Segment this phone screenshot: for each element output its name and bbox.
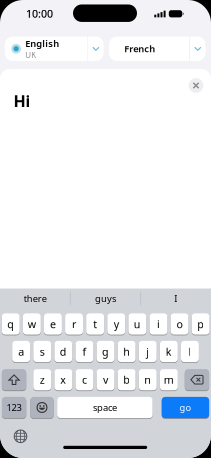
button[interactable]: l	[181, 341, 199, 362]
staticText: p	[197, 317, 204, 331]
button[interactable]: m	[160, 369, 178, 390]
staticText: space	[93, 401, 117, 414]
staticText: Hi	[13, 90, 30, 112]
staticText: o	[177, 317, 183, 331]
staticText: guys	[95, 292, 116, 305]
button[interactable]: x	[54, 369, 72, 390]
staticText: I	[174, 292, 177, 305]
button[interactable]: French	[109, 36, 205, 61]
staticText: French	[124, 43, 155, 55]
staticText: s	[40, 344, 45, 359]
staticText: e	[50, 317, 56, 331]
staticText: x	[60, 373, 66, 387]
staticText: q	[7, 317, 14, 331]
staticText: f	[82, 344, 86, 359]
staticText: n	[144, 373, 151, 387]
staticText: there	[24, 292, 47, 305]
button[interactable]: j	[139, 341, 157, 362]
staticText: d	[60, 344, 67, 359]
staticText: j	[146, 344, 149, 359]
staticText: c	[82, 373, 87, 387]
button[interactable]: a	[12, 341, 30, 362]
button[interactable]: Delete	[185, 369, 209, 390]
button[interactable]: u	[128, 313, 146, 335]
button[interactable]: n	[139, 369, 157, 390]
staticText: a	[18, 344, 24, 359]
staticText: u	[134, 317, 141, 331]
button[interactable]: c	[75, 369, 93, 390]
button[interactable]: h	[118, 341, 136, 362]
button[interactable]: there	[1, 287, 69, 309]
button[interactable]: English	[5, 36, 104, 61]
staticText: 10:00	[26, 6, 53, 21]
staticText: i	[157, 317, 160, 331]
staticText: y	[114, 317, 119, 331]
button[interactable]: w	[23, 313, 41, 335]
staticText: UK	[25, 50, 36, 60]
button[interactable]: g	[97, 341, 114, 362]
staticText: r	[72, 317, 76, 331]
staticText: go	[179, 401, 191, 414]
staticText: g	[102, 344, 109, 359]
button[interactable]: s	[33, 341, 51, 362]
button[interactable]: z	[33, 369, 51, 390]
staticText: v	[103, 373, 108, 387]
button[interactable]: i	[149, 313, 167, 335]
button[interactable]: Shift	[2, 369, 26, 390]
button[interactable]: v	[97, 369, 114, 390]
button[interactable]: r	[65, 313, 83, 335]
button[interactable]: Next keyboard	[12, 428, 29, 445]
staticText: k	[166, 344, 172, 359]
button[interactable]: space	[57, 397, 153, 418]
button[interactable]: b	[118, 369, 136, 390]
button[interactable]: Clear text	[189, 78, 203, 93]
button[interactable]: o	[171, 313, 188, 335]
button[interactable]: d	[54, 341, 72, 362]
button[interactable]: Emoji	[30, 397, 54, 418]
button[interactable]: p	[192, 313, 210, 335]
staticText: l	[188, 344, 191, 359]
button[interactable]: go	[162, 397, 209, 418]
button[interactable]: I	[142, 287, 210, 309]
button[interactable]: t	[86, 313, 104, 335]
staticText: m	[164, 373, 174, 387]
staticText: b	[123, 373, 130, 387]
button[interactable]: k	[160, 341, 178, 362]
staticText: English	[25, 37, 59, 50]
button[interactable]: 123	[2, 397, 26, 418]
button[interactable]: f	[75, 341, 93, 362]
button[interactable]: y	[107, 313, 125, 335]
button[interactable]: e	[44, 313, 62, 335]
button[interactable]: q	[2, 313, 20, 335]
staticText: 123	[7, 401, 22, 414]
staticText: z	[40, 373, 45, 387]
button[interactable]: guys	[71, 287, 139, 309]
staticText: h	[123, 344, 130, 359]
staticText: w	[28, 317, 36, 331]
staticText: t	[93, 317, 97, 331]
